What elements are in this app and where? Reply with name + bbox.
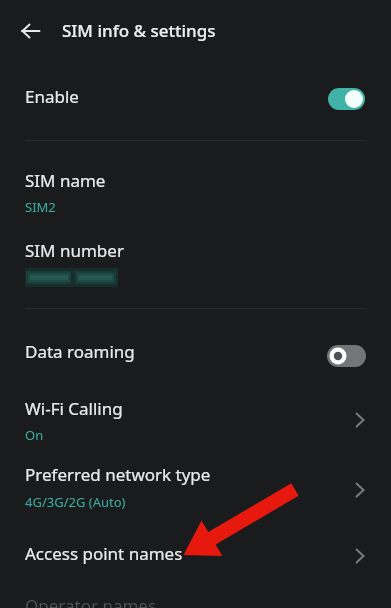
- staticText: Operator names: [25, 594, 157, 608]
- staticText: Wi-Fi Calling: [25, 397, 123, 420]
- staticText: SIM name: [25, 169, 106, 192]
- button[interactable]: Enable: [0, 72, 391, 126]
- button[interactable]: Data roaming: [0, 330, 391, 382]
- button[interactable]: Preferred network type: [0, 458, 391, 520]
- button[interactable]: SIM number: [0, 234, 391, 294]
- staticText: SIM info & settings: [62, 19, 216, 42]
- staticText: 4G/3G/2G (Auto): [25, 493, 126, 511]
- staticText: On: [25, 426, 44, 444]
- staticText: Access point names: [25, 542, 183, 565]
- staticText: SIM number: [25, 239, 124, 262]
- button[interactable]: Operator names: [0, 588, 391, 608]
- staticText: SIM2: [25, 198, 56, 216]
- button[interactable]: SIM name: [0, 162, 391, 224]
- button[interactable]: [13, 13, 49, 49]
- button[interactable]: Access point names: [0, 536, 391, 580]
- staticText: Preferred network type: [25, 463, 211, 486]
- staticText: Enable: [25, 85, 79, 108]
- button[interactable]: Wi-Fi Calling: [0, 392, 391, 448]
- staticText: Data roaming: [25, 340, 135, 363]
